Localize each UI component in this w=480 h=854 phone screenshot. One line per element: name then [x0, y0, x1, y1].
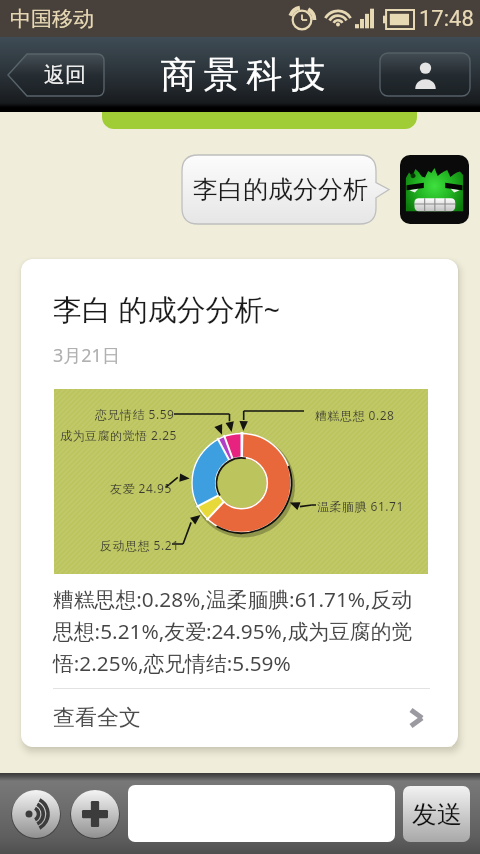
staticText: 友爱 24.95 — [110, 480, 172, 496]
staticText: 商景科技 — [157, 52, 329, 97]
staticText: 李白的成分分析 — [193, 174, 368, 205]
staticText: 温柔腼腆 61.71 — [317, 498, 404, 514]
button[interactable]: 联系人 — [380, 53, 470, 96]
staticText: 成为豆腐的觉悟 2.25 — [60, 427, 177, 443]
staticText: 返回 — [44, 62, 86, 88]
staticText: 恋兄情结 5.59 — [95, 406, 175, 422]
button[interactable] — [128, 785, 395, 842]
staticText: 17:48 — [419, 6, 474, 32]
button[interactable]: 李白的成分分析 — [182, 155, 389, 224]
button[interactable]: 查看全文 — [21, 689, 458, 747]
staticText: 发送 — [412, 799, 462, 830]
staticText: 反动思想 5.21 — [100, 537, 180, 553]
staticText: 糟糕思想:0.28%,温柔腼腆:61.71%,反动思想:5.21%,友爱:24.… — [53, 585, 426, 678]
button[interactable]: 发送 — [403, 786, 470, 842]
button[interactable]: 更多 — [70, 789, 120, 839]
staticText: 3月21日 — [53, 343, 120, 368]
button[interactable]: 头像 — [400, 155, 469, 224]
button[interactable]: 李白 的成分分析~ — [21, 259, 458, 747]
staticText: 李白 的成分分析~ — [53, 289, 281, 329]
staticText: 糟糕思想 0.28 — [315, 407, 395, 423]
staticText: 查看全文 — [53, 704, 141, 732]
button[interactable]: 语音 — [11, 789, 61, 839]
staticText: 中国移动 — [10, 6, 94, 32]
button[interactable]: 返回 — [8, 54, 104, 96]
